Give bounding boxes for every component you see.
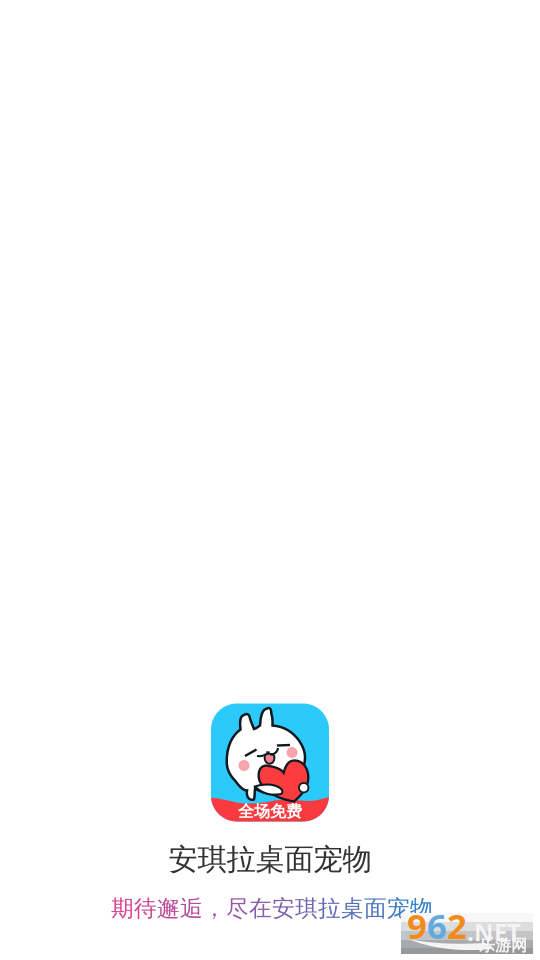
staticText: ， xyxy=(203,895,226,922)
staticText: 全场免费 xyxy=(238,802,302,821)
staticText: 物 xyxy=(410,895,433,922)
staticText: 琪 xyxy=(295,895,318,922)
staticText: 期 xyxy=(111,895,134,922)
staticText: 邂 xyxy=(157,895,180,922)
staticText: 9 xyxy=(407,902,427,948)
staticText: 6 xyxy=(427,902,447,948)
staticText: 2 xyxy=(447,902,467,948)
staticText: .NET xyxy=(467,916,521,947)
staticText: 尽 xyxy=(226,895,249,922)
staticText: 宠 xyxy=(387,895,410,922)
staticText: 逅 xyxy=(180,895,203,922)
staticText: 桌 xyxy=(341,895,364,922)
staticText: 在 xyxy=(249,895,272,922)
staticText: 面 xyxy=(364,895,387,922)
staticText: 待 xyxy=(134,895,157,922)
staticText: 乐游网 xyxy=(479,936,527,955)
staticText: 安 xyxy=(272,895,295,922)
staticText: 安琪拉桌面宠物 xyxy=(168,841,371,877)
staticText: 拉 xyxy=(318,895,341,922)
